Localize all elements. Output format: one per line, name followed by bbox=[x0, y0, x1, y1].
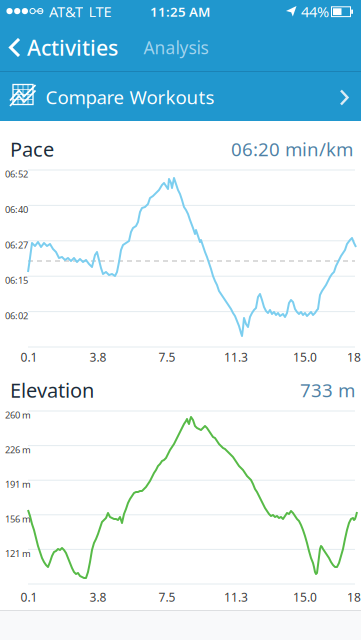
staticText: 06:40 bbox=[5, 203, 28, 216]
staticText: 15.0 bbox=[293, 589, 317, 605]
staticText: 121 m bbox=[5, 547, 31, 560]
staticText: 06:52 bbox=[5, 168, 28, 180]
staticText: 18. bbox=[347, 589, 361, 605]
staticText: 226 m bbox=[5, 443, 31, 456]
staticText: 11.3 bbox=[224, 589, 248, 605]
staticText: 18. bbox=[347, 349, 361, 365]
staticText: LTE bbox=[88, 2, 111, 21]
staticText: 7.5 bbox=[158, 349, 175, 365]
staticText: Elevation bbox=[10, 377, 94, 403]
staticText: 44% bbox=[301, 2, 329, 21]
button[interactable]: Activities bbox=[1, 23, 118, 72]
staticText: 0.1 bbox=[20, 589, 37, 605]
button[interactable]: Compare Workouts bbox=[0, 72, 361, 120]
staticText: 06:20 min/km bbox=[231, 137, 353, 161]
staticText: 3.8 bbox=[89, 589, 106, 605]
staticText: 06:02 bbox=[5, 309, 28, 322]
staticText: Activities bbox=[27, 33, 118, 62]
staticText: AT&T bbox=[49, 2, 83, 21]
staticText: 191 m bbox=[5, 478, 31, 490]
staticText: Pace bbox=[10, 136, 54, 162]
staticText: 3.8 bbox=[89, 349, 106, 365]
staticText: Analysis bbox=[143, 36, 208, 59]
staticText: 06:15 bbox=[5, 274, 28, 286]
staticText: 11:25 AM bbox=[150, 3, 210, 20]
staticText: 733 m bbox=[300, 378, 355, 402]
staticText: 0.1 bbox=[20, 349, 37, 365]
staticText: Compare Workouts bbox=[45, 85, 214, 109]
staticText: 11.3 bbox=[224, 349, 248, 365]
staticText: 7.5 bbox=[158, 589, 175, 605]
staticText: 15.0 bbox=[293, 349, 317, 365]
staticText: 06:27 bbox=[5, 239, 28, 251]
staticText: 156 m bbox=[5, 513, 31, 525]
staticText: 260 m bbox=[5, 409, 31, 421]
